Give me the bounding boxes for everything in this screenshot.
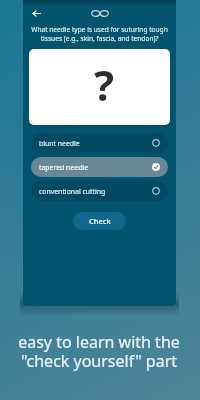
staticText: tapered needle: [39, 163, 89, 172]
staticText: What needle type is used for suturing to…: [30, 25, 169, 43]
staticText: ?: [94, 56, 115, 113]
staticText: easy to learn with the "check yourself" …: [0, 331, 199, 371]
button[interactable]: Back: [27, 4, 45, 22]
button[interactable]: Infinite mode: [88, 6, 112, 20]
staticText: blunt needle: [39, 139, 80, 148]
button[interactable]: tapered needle: [31, 157, 168, 177]
button[interactable]: conventional cutting: [31, 181, 168, 201]
staticText: conventional cutting: [39, 187, 106, 196]
button[interactable]: blunt needle: [31, 133, 168, 153]
button[interactable]: Check: [73, 212, 126, 230]
staticText: Check: [89, 216, 111, 226]
